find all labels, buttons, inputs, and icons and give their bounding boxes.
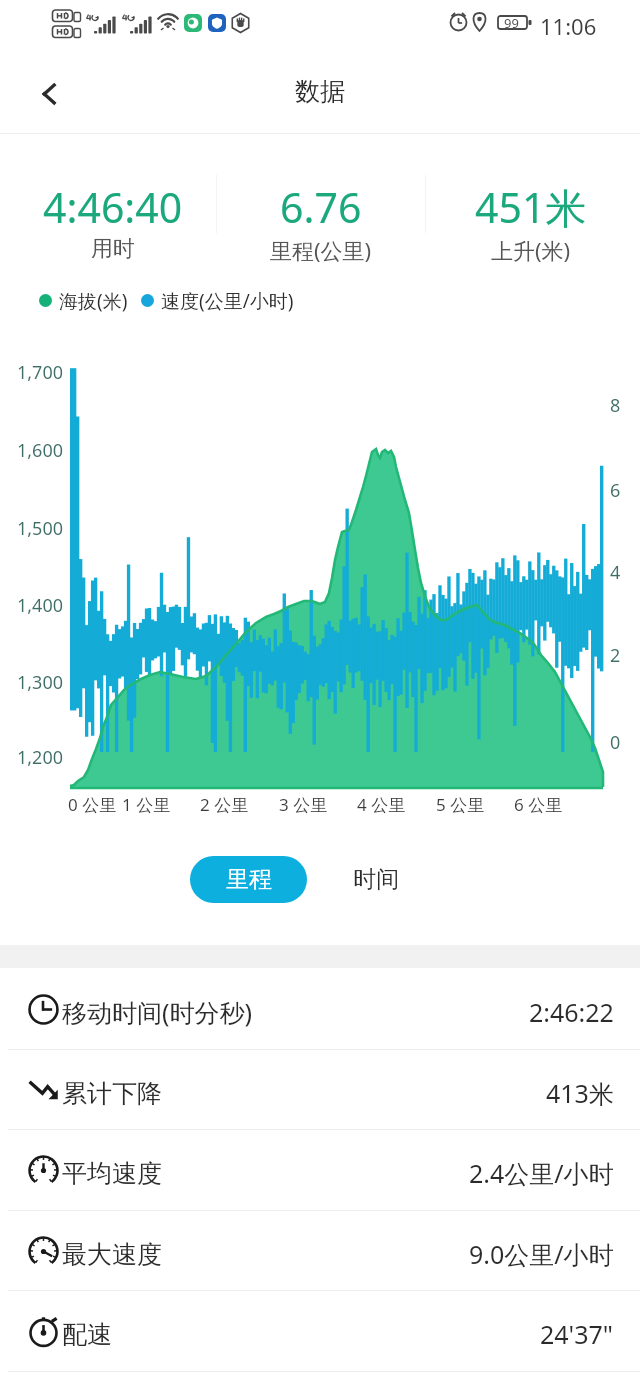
staticText: 6 — [610, 478, 621, 503]
staticText: 24'37" — [540, 1317, 614, 1351]
staticText: 平均速度 — [62, 1158, 162, 1189]
staticText: 2.4公里/小时 — [469, 1156, 614, 1190]
button[interactable]: 累计下降 — [0, 1049, 640, 1129]
staticText: 上升(米) — [491, 235, 571, 265]
staticText: 最大速度 — [62, 1239, 162, 1270]
staticText: 海拔(米) — [59, 288, 128, 312]
staticText: 1,500 — [17, 516, 64, 541]
staticText: 1,700 — [17, 360, 64, 385]
staticText: 9.0公里/小时 — [469, 1237, 614, 1271]
button[interactable]: 配速 — [0, 1290, 640, 1370]
staticText: 时间 — [353, 865, 399, 894]
staticText: 数据 — [295, 76, 345, 107]
staticText: 里程 — [226, 865, 272, 894]
staticText: 451米 — [475, 179, 587, 235]
staticText: 2:46:22 — [529, 995, 614, 1029]
staticText: 5 公里 — [436, 793, 485, 816]
staticText: 6 公里 — [514, 793, 563, 816]
staticText: 2 — [610, 643, 621, 668]
staticText: 里程(公里) — [270, 235, 372, 265]
staticText: 1,300 — [17, 670, 64, 695]
staticText: 4 公里 — [357, 793, 406, 816]
staticText: 配速 — [62, 1319, 112, 1350]
button[interactable]: 移动时间(时分秒) — [0, 968, 640, 1048]
button[interactable]: 最大速度 — [0, 1210, 640, 1290]
staticText: 3 公里 — [279, 793, 328, 816]
staticText: 0 公里 — [68, 793, 117, 816]
staticText: 1 公里 — [122, 793, 171, 816]
staticText: 1,600 — [17, 438, 64, 463]
staticText: 用时 — [91, 235, 135, 263]
button[interactable]: 时间 — [341, 856, 411, 903]
staticText: 4:46:40 — [43, 179, 183, 235]
staticText: 1,200 — [17, 745, 64, 770]
staticText: 速度(公里/小时) — [161, 288, 294, 312]
staticText: 8 — [610, 393, 621, 418]
staticText: 413米 — [546, 1076, 614, 1110]
staticText: 4 — [610, 560, 621, 585]
staticText: 6.76 — [280, 179, 362, 235]
button[interactable]: Back — [22, 66, 78, 122]
staticText: 0 — [610, 730, 621, 755]
button[interactable]: 里程 — [190, 856, 307, 903]
staticText: 2 公里 — [200, 793, 249, 816]
staticText: 1,400 — [17, 593, 64, 618]
staticText: 99 — [504, 14, 519, 32]
staticText: 累计下降 — [62, 1078, 162, 1109]
staticText: 11:06 — [540, 11, 597, 41]
staticText: 移动时间(时分秒) — [62, 995, 253, 1029]
button[interactable]: 平均速度 — [0, 1129, 640, 1209]
